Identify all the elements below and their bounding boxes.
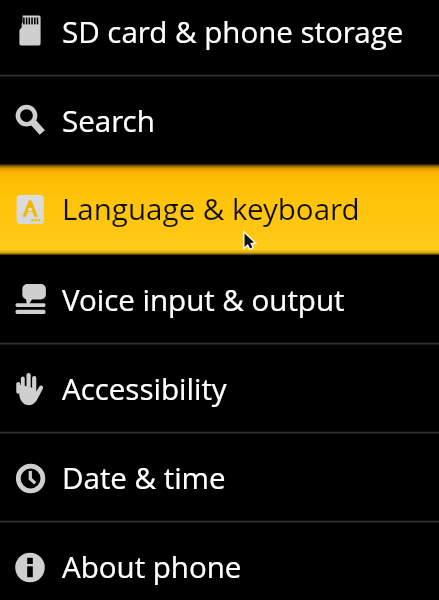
staticText: Voice input & output [62,279,345,319]
other: Voice [0,256,439,345]
button[interactable]: Information [0,523,439,600]
staticText: Date & time [62,457,226,497]
other: Keyboard [0,164,439,255]
staticText: Accessibility [62,368,227,408]
button[interactable]: Voice [0,256,439,345]
button[interactable]: Clock [0,434,439,523]
staticText: About phone [62,546,242,586]
other: Clock [0,434,439,523]
other: SD card [0,0,439,77]
other: Accessibility [0,345,439,434]
other: Search [0,77,439,166]
button[interactable]: Keyboard [0,164,439,255]
button[interactable]: Accessibility [0,345,439,434]
staticText: Search [62,100,155,140]
staticText: SD card & phone storage [62,11,404,51]
button[interactable]: SD card [0,0,439,77]
staticText: Language & keyboard [62,188,360,228]
button[interactable]: Search [0,77,439,166]
other: Information [0,523,439,600]
